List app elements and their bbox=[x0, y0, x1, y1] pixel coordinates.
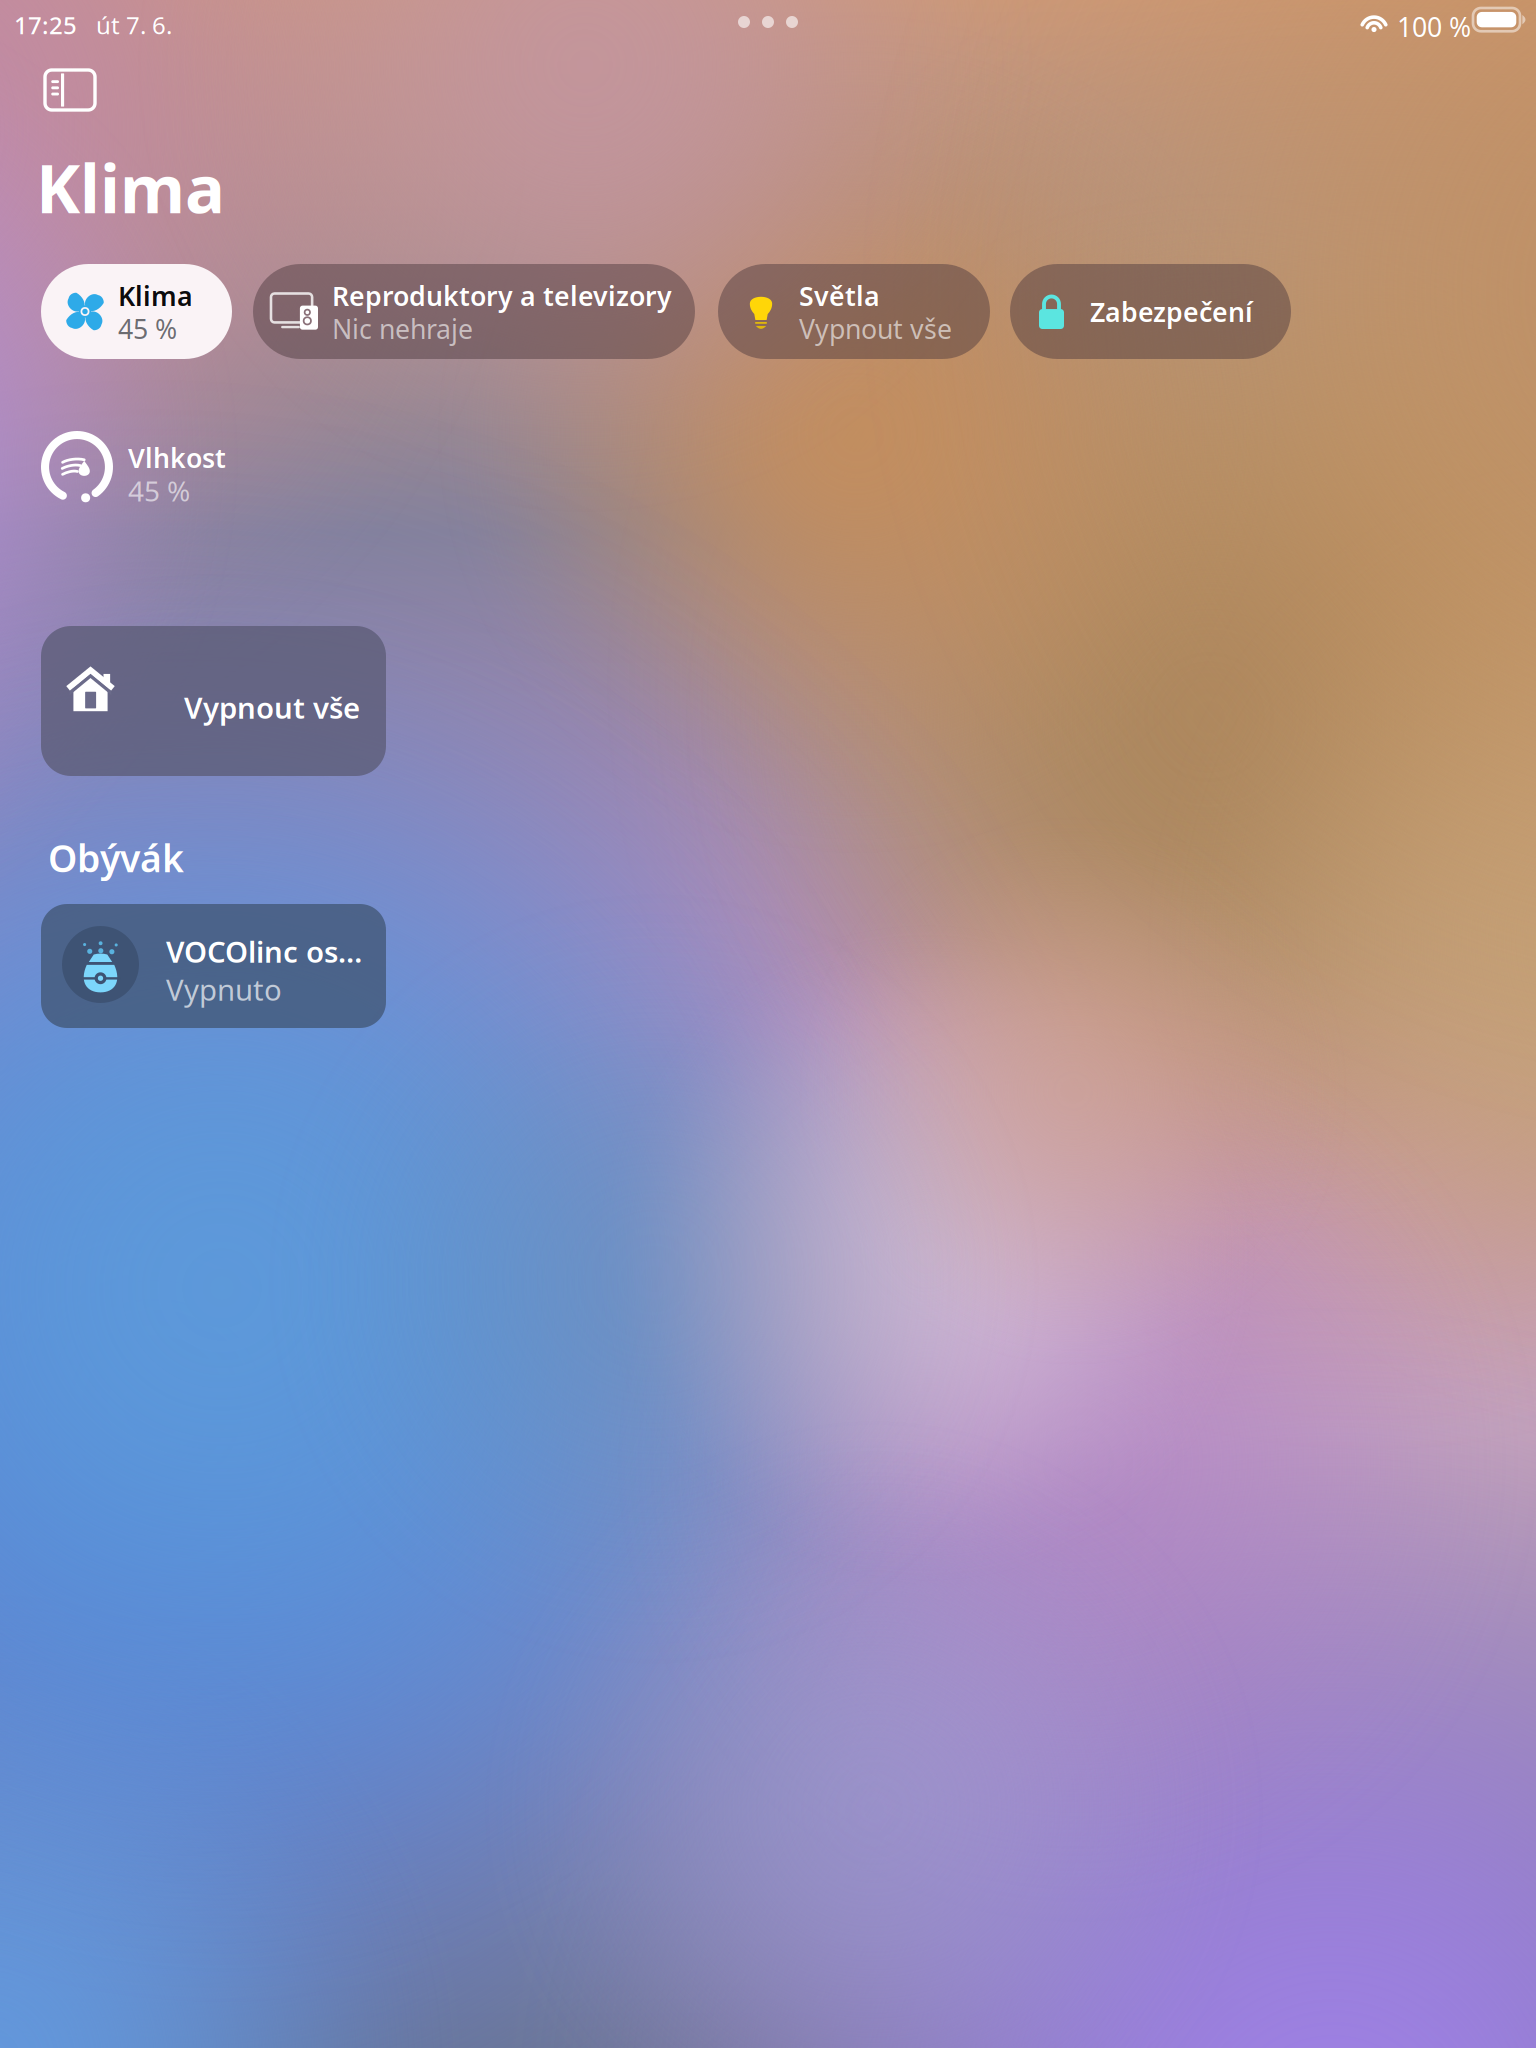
staticText: Vlhkost bbox=[128, 440, 226, 475]
staticText: Vypnout vše bbox=[184, 688, 360, 727]
button[interactable]: Klima bbox=[41, 264, 232, 359]
staticText: 45 % bbox=[118, 311, 177, 346]
staticText: Nic nehraje bbox=[332, 311, 473, 346]
staticText: Vypnuto bbox=[166, 970, 282, 1009]
button[interactable]: Reproduktory a televizory bbox=[253, 264, 695, 359]
staticText: VOCOlinc os… bbox=[166, 932, 362, 971]
button[interactable]: Světla bbox=[718, 264, 990, 359]
button[interactable]: VOCOlinc os… bbox=[41, 904, 386, 1028]
button[interactable]: Zabezpečení bbox=[1010, 264, 1291, 359]
staticText: Reproduktory a televizory bbox=[332, 278, 672, 313]
staticText: út 7. 6. bbox=[96, 9, 172, 41]
staticText: Klima bbox=[36, 143, 225, 231]
staticText: 100 % bbox=[1397, 9, 1471, 44]
staticText: Klima bbox=[118, 278, 193, 313]
staticText: Obývák bbox=[48, 833, 184, 883]
staticText: Světla bbox=[799, 278, 880, 313]
button[interactable]: Show sidebar bbox=[22, 45, 118, 135]
staticText: 17:25 bbox=[14, 9, 77, 41]
staticText: 45 % bbox=[128, 472, 190, 509]
staticText: Zabezpečení bbox=[1090, 294, 1253, 329]
button[interactable]: Vypnout vše bbox=[41, 626, 386, 776]
staticText: Vypnout vše bbox=[799, 311, 952, 346]
